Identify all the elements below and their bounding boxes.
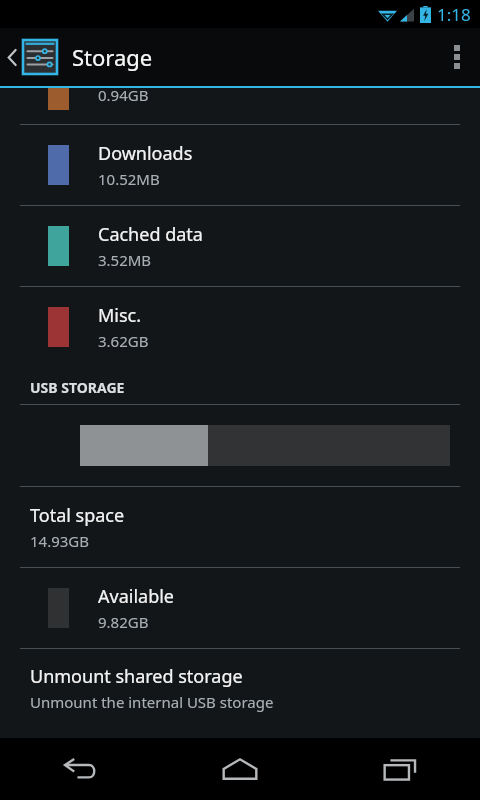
staticText: 3.52MB — [98, 250, 152, 270]
staticText: Storage — [72, 42, 153, 72]
button[interactable]: Total space — [0, 487, 480, 567]
staticText: 1:18 — [437, 3, 471, 26]
staticText: 9.82GB — [98, 612, 149, 632]
staticText: USB STORAGE — [30, 378, 125, 397]
staticText: 14.93GB — [30, 531, 90, 551]
button[interactable]: Cached data — [0, 206, 480, 286]
button[interactable]: Downloads — [0, 125, 480, 205]
button[interactable]: Navigate up — [0, 34, 61, 80]
staticText: 10.52MB — [98, 169, 160, 189]
button[interactable]: Unmount shared storage — [0, 649, 480, 727]
staticText: Unmount the internal USB storage — [30, 692, 274, 712]
button[interactable]: Misc. — [0, 287, 480, 367]
button[interactable]: Back — [0, 738, 160, 800]
staticText: Unmount shared storage — [30, 664, 243, 689]
button[interactable]: More options — [434, 28, 480, 86]
staticText: Downloads — [98, 141, 193, 166]
staticText: Cached data — [98, 222, 203, 247]
button[interactable]: Home — [160, 738, 320, 800]
staticText: Misc. — [98, 303, 142, 328]
button[interactable]: 0.94GB — [0, 88, 480, 124]
button[interactable]: Recent apps — [320, 738, 480, 800]
staticText: Available — [98, 584, 174, 609]
staticText: 3.62GB — [98, 331, 149, 351]
staticText: 0.94GB — [98, 85, 149, 105]
button[interactable]: Available — [0, 568, 480, 648]
staticText: Total space — [30, 503, 125, 528]
